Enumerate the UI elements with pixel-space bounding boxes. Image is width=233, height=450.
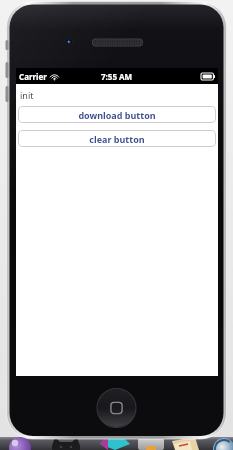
button[interactable]: download button bbox=[18, 106, 216, 123]
staticText: 7:55 AM bbox=[101, 71, 133, 82]
staticText: Carrier bbox=[19, 71, 47, 82]
staticText: download button bbox=[78, 109, 156, 121]
staticText: clear button bbox=[89, 133, 145, 145]
staticText: init bbox=[20, 89, 34, 101]
button[interactable]: clear button bbox=[18, 130, 216, 147]
